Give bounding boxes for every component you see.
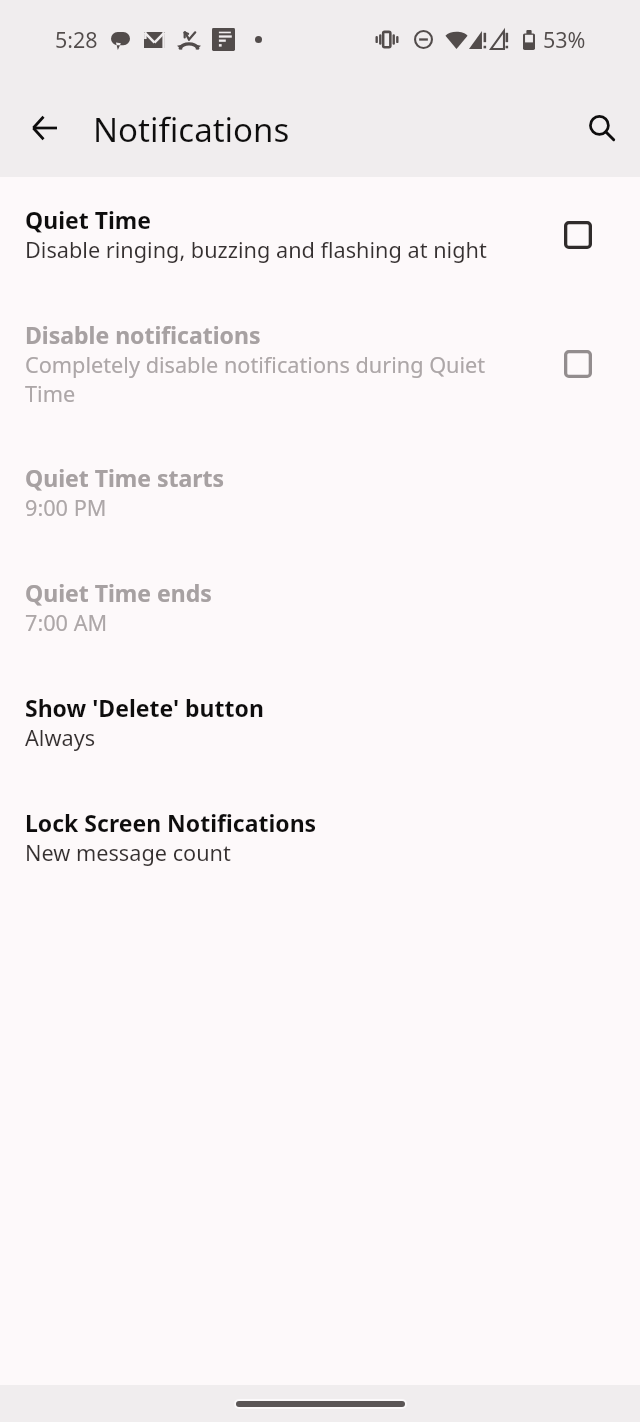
staticText: Lock Screen Notifications: [25, 807, 317, 838]
staticText: 5:28: [55, 25, 98, 54]
staticText: Notifications: [93, 107, 290, 152]
button[interactable]: Show 'Delete' button: [0, 665, 640, 780]
button[interactable]: Quiet Time: [0, 177, 640, 292]
staticText: Quiet Time starts: [25, 462, 225, 493]
staticText: Disable notifications: [25, 319, 261, 350]
staticText: Disable ringing, buzzing and flashing at…: [25, 235, 487, 265]
staticText: Show 'Delete' button: [25, 692, 264, 723]
button[interactable]: Toggle Quiet Time: [550, 207, 606, 263]
staticText: 7:00 AM: [25, 608, 108, 638]
staticText: New message count: [25, 838, 231, 868]
button[interactable]: Search: [578, 104, 626, 152]
button[interactable]: Quiet Time ends: [0, 550, 640, 665]
staticText: 9:00 PM: [25, 493, 107, 523]
staticText: 53%: [543, 25, 586, 54]
button[interactable]: Lock Screen Notifications: [0, 780, 640, 895]
button[interactable]: Back: [20, 104, 68, 152]
button[interactable]: Disable notifications: [0, 292, 640, 435]
button[interactable]: Quiet Time starts: [0, 435, 640, 550]
staticText: Completely disable notifications during …: [25, 350, 503, 408]
staticText: Always: [25, 723, 96, 753]
staticText: Quiet Time: [25, 204, 152, 235]
staticText: Quiet Time ends: [25, 577, 212, 608]
button[interactable]: Toggle Disable notifications: [550, 336, 606, 392]
